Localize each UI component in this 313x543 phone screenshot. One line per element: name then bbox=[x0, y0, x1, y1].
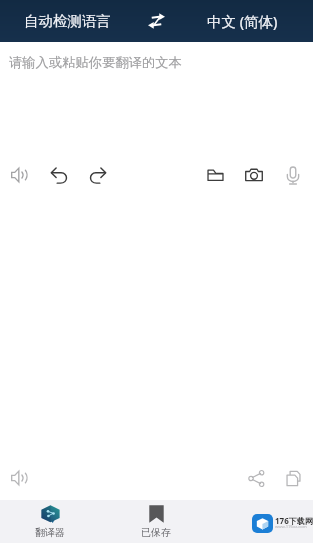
button[interactable]: Undo bbox=[41, 157, 77, 193]
staticText: 176下载网 bbox=[275, 515, 313, 526]
button[interactable]: Camera bbox=[236, 157, 272, 193]
staticText: 自动检测语言 bbox=[24, 12, 111, 30]
button[interactable]: Swap languages bbox=[134, 0, 179, 42]
button[interactable]: 自动检测语言 bbox=[0, 0, 134, 42]
button[interactable]: Voice input bbox=[275, 157, 311, 193]
button[interactable]: Listen translation bbox=[1, 460, 37, 496]
button[interactable]: Documents bbox=[197, 157, 233, 193]
staticText: 中文 (简体) bbox=[207, 11, 278, 31]
button[interactable]: Copy bbox=[275, 460, 311, 496]
button[interactable]: Redo bbox=[80, 157, 116, 193]
staticText: 翻译器 bbox=[35, 526, 65, 539]
button[interactable]: Share bbox=[238, 460, 274, 496]
staticText: www.176xz.com bbox=[275, 524, 307, 530]
staticText: 已保存 bbox=[141, 526, 171, 539]
button[interactable]: 已保存 bbox=[106, 500, 206, 543]
button[interactable]: 中文 (简体) bbox=[179, 0, 305, 42]
staticText: 请输入或粘贴你要翻译的文本 bbox=[9, 54, 182, 71]
button[interactable]: Listen bbox=[1, 157, 37, 193]
button[interactable]: 翻译器 bbox=[0, 500, 100, 543]
